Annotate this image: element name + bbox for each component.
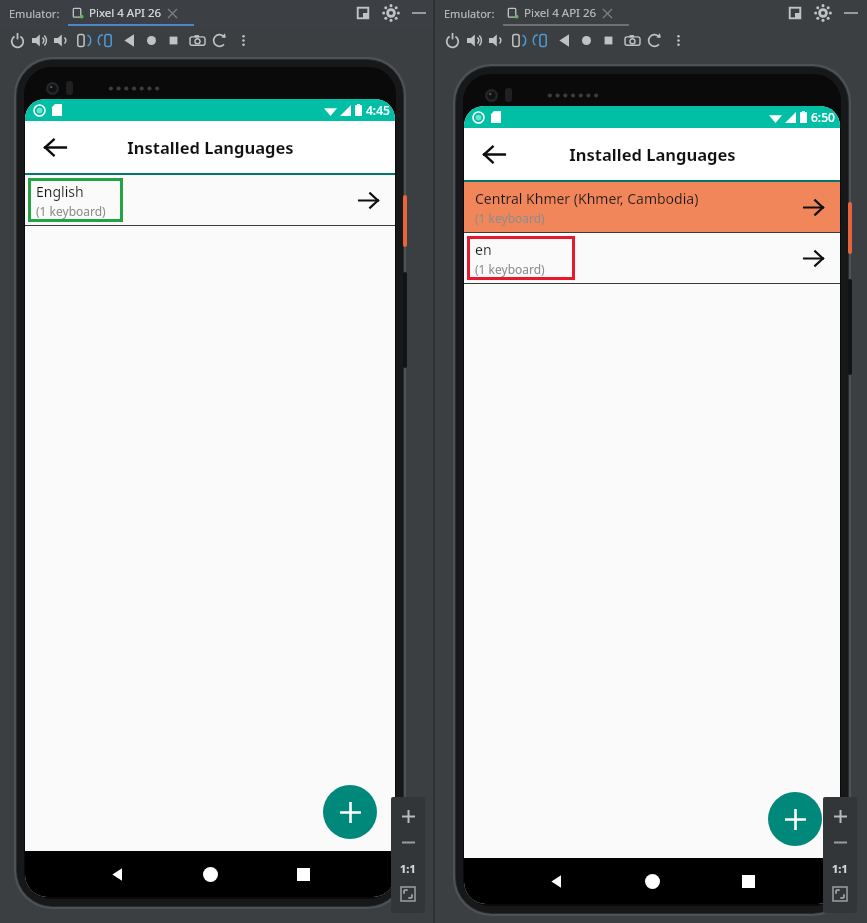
staticText: (1 keyboard): [475, 210, 545, 226]
button[interactable]: Back: [536, 861, 576, 901]
button[interactable]: Rotate right: [94, 29, 116, 51]
button[interactable]: History: [643, 29, 665, 51]
button[interactable]: Power: [441, 29, 463, 51]
staticText: en: [475, 240, 492, 259]
button[interactable]: Central Khmer (Khmer, Cambodia): [464, 182, 840, 232]
button[interactable]: Overview: [283, 854, 323, 894]
button[interactable]: Back: [97, 854, 137, 894]
button[interactable]: Fit to window: [827, 881, 853, 907]
button[interactable]: Screenshot: [186, 29, 208, 51]
button[interactable]: Actual size: [827, 855, 853, 881]
button[interactable]: Home: [140, 29, 162, 51]
button[interactable]: Back: [553, 29, 575, 51]
staticText: Emulator:: [9, 6, 60, 21]
button[interactable]: Overview: [162, 29, 184, 51]
button[interactable]: English: [25, 175, 395, 225]
button[interactable]: Rotate left: [72, 29, 94, 51]
button[interactable]: Settings: [383, 5, 399, 21]
button[interactable]: Rotate right: [529, 29, 551, 51]
button[interactable]: Minimize: [411, 5, 427, 21]
staticText: 1:1: [832, 861, 848, 876]
button[interactable]: Navigate up: [35, 127, 75, 167]
staticText: Pixel 4 API 26: [524, 5, 597, 21]
button[interactable]: Screenshot: [621, 29, 643, 51]
button[interactable]: Home: [190, 854, 230, 894]
button[interactable]: Fit to window: [395, 881, 421, 907]
button[interactable]: Home: [632, 861, 672, 901]
button[interactable]: More: [667, 29, 689, 51]
staticText: Emulator:: [444, 6, 495, 21]
button[interactable]: Back: [118, 29, 140, 51]
button[interactable]: Dock window: [787, 5, 803, 21]
button[interactable]: Volume down: [485, 29, 507, 51]
button[interactable]: History: [208, 29, 230, 51]
button[interactable]: Add language: [323, 785, 377, 839]
button[interactable]: Volume down: [50, 29, 72, 51]
button[interactable]: Overview: [728, 861, 768, 901]
button[interactable]: Dock window: [355, 5, 371, 21]
button[interactable]: Navigate up: [474, 134, 514, 174]
staticText: 6:50: [811, 109, 835, 125]
button[interactable]: More: [232, 29, 254, 51]
button[interactable]: Rotate left: [507, 29, 529, 51]
staticText: 4:45: [366, 102, 390, 118]
button[interactable]: Power: [6, 29, 28, 51]
button[interactable]: en: [464, 233, 840, 283]
button[interactable]: Zoom out: [395, 829, 421, 855]
staticText: Pixel 4 API 26: [89, 5, 162, 21]
button[interactable]: Actual size: [395, 855, 421, 881]
button[interactable]: Add language: [768, 792, 822, 846]
button[interactable]: Zoom in: [827, 803, 853, 829]
staticText: English: [36, 182, 84, 201]
staticText: Installed Languages: [127, 136, 294, 158]
button[interactable]: Zoom in: [395, 803, 421, 829]
button[interactable]: Home: [575, 29, 597, 51]
button[interactable]: Volume up: [463, 29, 485, 51]
staticText: (1 keyboard): [36, 203, 106, 219]
button[interactable]: Zoom out: [827, 829, 853, 855]
staticText: Installed Languages: [569, 143, 736, 165]
button[interactable]: Overview: [597, 29, 619, 51]
button[interactable]: Settings: [815, 5, 831, 21]
button[interactable]: Volume up: [28, 29, 50, 51]
button[interactable]: Minimize: [843, 5, 859, 21]
staticText: (1 keyboard): [475, 261, 545, 277]
staticText: 1:1: [400, 861, 416, 876]
staticText: Central Khmer (Khmer, Cambodia): [475, 189, 699, 208]
